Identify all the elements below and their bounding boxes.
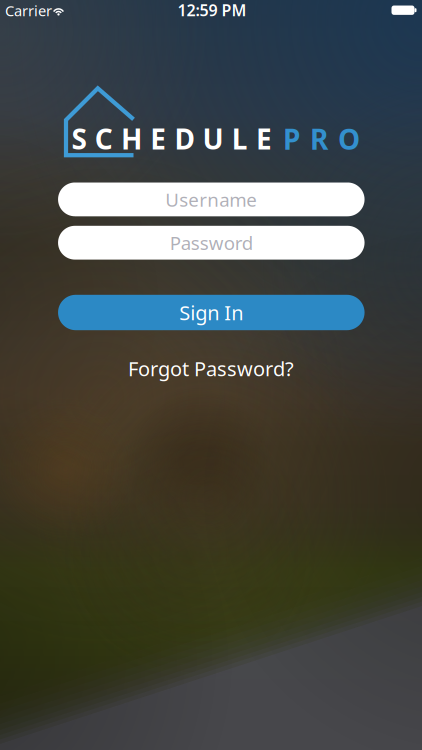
staticText: Sign In [179, 299, 243, 326]
staticText: L [232, 120, 248, 157]
staticText: Password [170, 230, 253, 255]
staticText: S [72, 120, 87, 157]
staticText: E [256, 120, 272, 157]
staticText: E [150, 120, 166, 157]
button[interactable]: Password [58, 226, 365, 260]
staticText: R [310, 120, 328, 157]
staticText: C [95, 120, 113, 157]
staticText: D [174, 120, 194, 157]
staticText: 12:59 PM [177, 0, 246, 21]
button[interactable]: Sign In [58, 295, 365, 330]
staticText: O [338, 120, 360, 157]
staticText: Carrier [5, 1, 52, 20]
staticText: H [121, 120, 142, 157]
staticText: P [283, 120, 300, 157]
button[interactable]: Username [58, 182, 365, 216]
staticText: Forgot Password? [128, 355, 294, 382]
staticText: U [203, 120, 224, 157]
staticText: Username [165, 187, 257, 212]
button[interactable]: Forgot Password? [128, 355, 294, 382]
